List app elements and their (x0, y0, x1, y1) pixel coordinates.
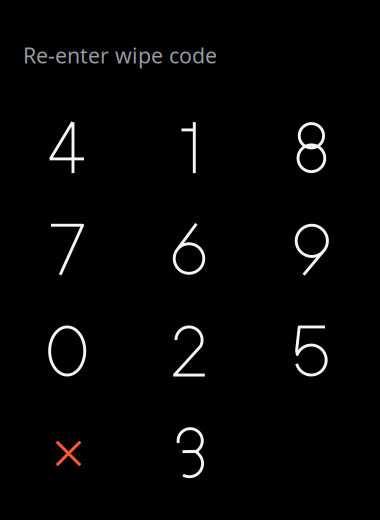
button[interactable]: Delete (6, 402, 128, 504)
button[interactable]: 4 (6, 97, 128, 199)
button[interactable]: 1 (128, 97, 250, 199)
button[interactable]: 9 (250, 199, 372, 300)
button[interactable]: 6 (128, 199, 250, 300)
staticText: Re-enter wipe code (23, 41, 217, 69)
button[interactable]: 7 (6, 199, 128, 300)
button[interactable]: 8 (250, 97, 372, 199)
button[interactable]: 0 (6, 300, 128, 402)
button[interactable]: 3 (128, 402, 250, 504)
button[interactable]: 2 (128, 300, 250, 402)
button[interactable]: 5 (250, 300, 372, 402)
